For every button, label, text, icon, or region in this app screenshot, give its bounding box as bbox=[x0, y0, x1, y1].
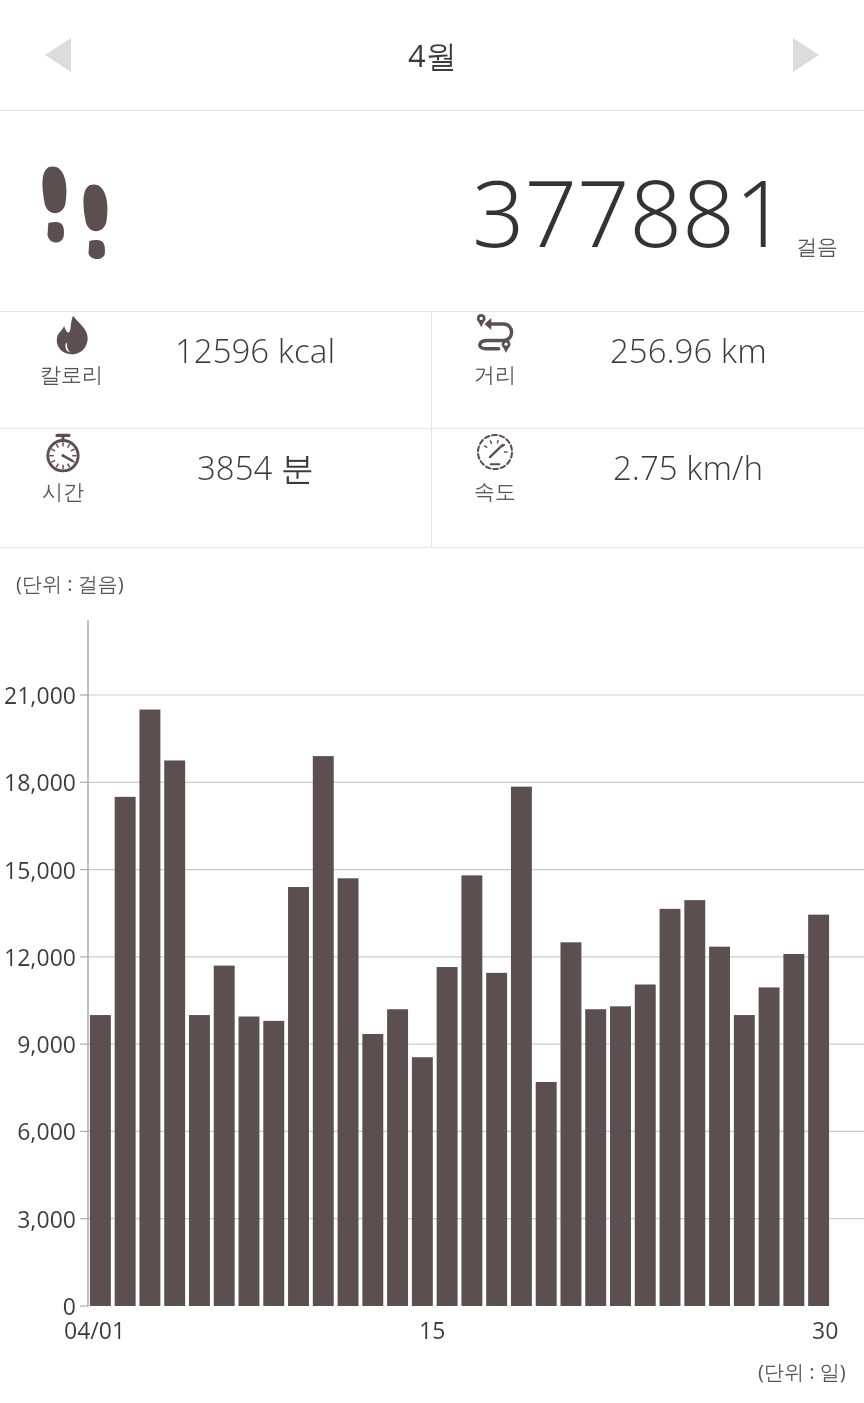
staticText: 걸음 bbox=[796, 234, 838, 260]
staticText: 21,000 bbox=[0, 679, 76, 710]
staticText: 9,000 bbox=[0, 1028, 76, 1059]
staticText: 칼로리 bbox=[40, 362, 103, 388]
button[interactable]: Speed bbox=[432, 429, 864, 505]
staticText: 속도 bbox=[474, 479, 516, 505]
staticText: 4월 bbox=[408, 34, 457, 76]
staticText: 30 bbox=[812, 1314, 839, 1345]
staticText: 18,000 bbox=[0, 766, 76, 797]
button[interactable]: Calories bbox=[0, 312, 431, 388]
other: Speed bbox=[472, 429, 518, 475]
staticText: 15,000 bbox=[0, 854, 76, 885]
staticText: 시간 bbox=[42, 479, 84, 505]
staticText: 12596 kcal bbox=[175, 328, 336, 373]
staticText: 256.96 km bbox=[610, 328, 767, 373]
staticText: 12,000 bbox=[0, 941, 76, 972]
button[interactable]: Distance bbox=[432, 312, 864, 388]
staticText: 2.75 km/h bbox=[613, 445, 764, 490]
staticText: 3854 분 bbox=[197, 445, 314, 490]
other: Time bbox=[40, 429, 86, 475]
button[interactable]: Previous month bbox=[18, 15, 98, 95]
staticText: 04/01 bbox=[64, 1314, 126, 1345]
staticText: 거리 bbox=[474, 362, 516, 388]
other: Distance bbox=[472, 312, 518, 358]
staticText: 6,000 bbox=[0, 1115, 76, 1146]
button[interactable]: Time bbox=[0, 429, 431, 505]
button[interactable]: Next month bbox=[766, 15, 846, 95]
staticText: 0 bbox=[0, 1290, 76, 1321]
staticText: 377881 bbox=[472, 149, 788, 274]
other: Calories bbox=[49, 312, 95, 358]
staticText: (단위 : 걸음) bbox=[16, 570, 124, 597]
staticText: 3,000 bbox=[0, 1203, 76, 1234]
staticText: 15 bbox=[419, 1314, 446, 1345]
staticText: (단위 : 일) bbox=[758, 1358, 846, 1385]
